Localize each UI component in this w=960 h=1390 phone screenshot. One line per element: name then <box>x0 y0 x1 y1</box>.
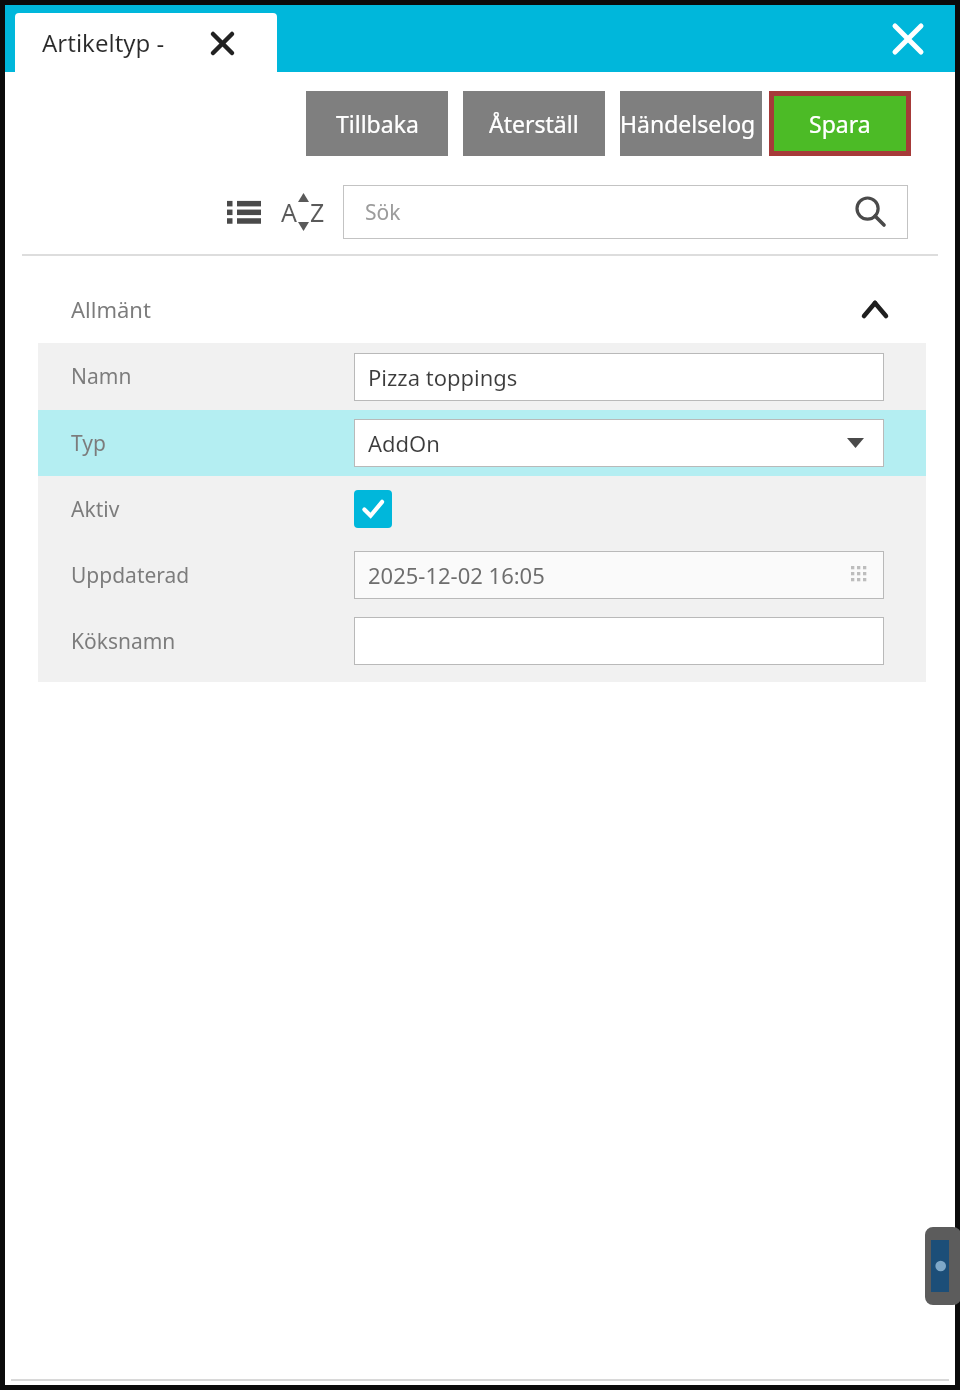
button[interactable]: Sortera A till Ö <box>277 186 329 238</box>
button[interactable]: Lista <box>221 189 267 235</box>
staticText: Aktiv <box>71 495 120 524</box>
staticText: Typ <box>71 429 106 458</box>
button[interactable]: Tillbaka <box>306 91 448 156</box>
button[interactable]: Stäng <box>885 16 931 62</box>
staticText: Artikeltyp - <box>42 26 165 59</box>
staticText: Köksnamn <box>71 627 176 656</box>
staticText: Namn <box>71 362 132 391</box>
button[interactable]: Sök <box>343 185 908 239</box>
button[interactable]: Öppna sidopanel <box>925 1227 960 1305</box>
button[interactable]: Pizza toppings <box>354 353 884 401</box>
other: Fäll ihop <box>857 291 893 327</box>
staticText: 2025-12-02 16:05 <box>368 560 545 590</box>
staticText: Tillbaka <box>336 108 419 139</box>
button[interactable]: 2025-12-02 16:05 <box>354 551 884 599</box>
button[interactable]: Aktiv <box>354 490 392 528</box>
button[interactable]: Spara <box>774 96 906 151</box>
staticText: Händelselogg <box>620 108 762 139</box>
button[interactable]: Allmänt <box>38 275 926 343</box>
staticText: Uppdaterad <box>71 561 190 590</box>
staticText: A <box>281 195 297 229</box>
staticText: AddOn <box>368 428 440 458</box>
other: Välj datum <box>846 561 874 589</box>
button[interactable]: AddOn <box>354 419 884 467</box>
staticText: Allmänt <box>71 294 151 324</box>
staticText: Spara <box>809 108 871 139</box>
staticText: Z <box>310 195 325 229</box>
button[interactable]: Händelselogg <box>620 91 762 156</box>
staticText: Pizza toppings <box>368 362 518 392</box>
button[interactable] <box>354 617 884 665</box>
staticText: Sök <box>365 198 401 227</box>
staticText: Återställ <box>489 108 579 139</box>
button[interactable]: Stäng flik <box>205 26 239 60</box>
button[interactable]: Återställ <box>463 91 605 156</box>
button[interactable]: Artikeltyp - <box>15 13 277 72</box>
